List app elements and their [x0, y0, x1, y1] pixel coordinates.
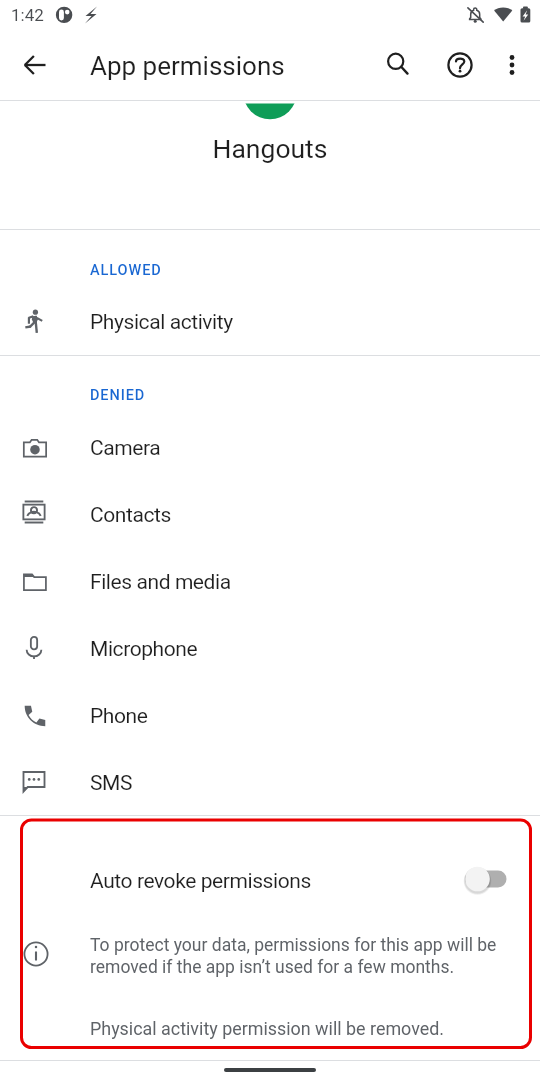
- staticText: Contacts: [90, 503, 171, 528]
- staticText: DENIED: [90, 387, 146, 404]
- button[interactable]: Help: [436, 41, 484, 89]
- staticText: Phone: [90, 704, 148, 729]
- staticText: Microphone: [90, 637, 198, 662]
- staticText: Physical activity: [90, 310, 233, 335]
- staticText: Files and media: [90, 570, 231, 595]
- staticText: Auto revoke permissions: [90, 869, 311, 894]
- button[interactable]: Physical activity: [0, 289, 540, 355]
- staticText: 1:42: [11, 5, 44, 25]
- button[interactable]: Camera: [0, 415, 540, 481]
- staticText: To protect your data, permissions for th…: [90, 935, 497, 977]
- staticText: SMS: [90, 771, 133, 796]
- button[interactable]: Files and media: [0, 549, 540, 615]
- staticText: ALLOWED: [90, 262, 162, 279]
- button[interactable]: Auto revoke permissions: [0, 856, 540, 906]
- staticText: Hangouts: [0, 133, 540, 164]
- button[interactable]: Phone: [0, 683, 540, 749]
- staticText: Physical activity permission will be rem…: [90, 1018, 445, 1039]
- button[interactable]: Auto revoke permissions toggle: [456, 855, 526, 905]
- button[interactable]: Search: [372, 41, 420, 89]
- button[interactable]: Microphone: [0, 616, 540, 682]
- button[interactable]: Navigate up: [11, 41, 59, 89]
- button[interactable]: More options: [488, 41, 536, 89]
- button[interactable]: Contacts: [0, 482, 540, 548]
- staticText: Camera: [90, 436, 161, 461]
- staticText: App permissions: [90, 51, 285, 81]
- button[interactable]: SMS: [0, 750, 540, 816]
